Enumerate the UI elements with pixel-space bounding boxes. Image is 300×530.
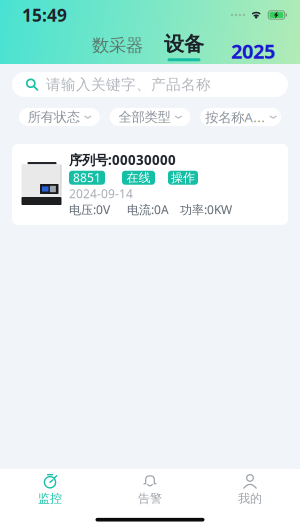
staticText: 我的: [238, 491, 262, 506]
button[interactable]: 数采器: [92, 30, 143, 60]
button[interactable]: 按名称A...: [200, 108, 281, 126]
staticText: 告警: [138, 491, 162, 506]
staticText: 全部类型: [118, 109, 170, 125]
button[interactable]: 请输入关键字、产品名称: [0, 72, 300, 97]
staticText: 序列号:00030000: [69, 151, 176, 169]
staticText: 2025: [231, 38, 275, 64]
staticText: 2024-09-14: [69, 186, 133, 202]
staticText: 在线: [126, 170, 150, 185]
button[interactable]: 监控: [0, 475, 100, 505]
staticText: 所有状态: [28, 109, 80, 125]
staticText: 监控: [38, 491, 62, 506]
staticText: 15:49: [22, 3, 67, 26]
staticText: 请输入关键字、产品名称: [46, 75, 211, 93]
button[interactable]: 全部类型: [110, 108, 190, 126]
staticText: 设备: [164, 32, 204, 56]
staticText: 按名称A...: [205, 108, 265, 126]
staticText: 功率:0KW: [180, 202, 232, 217]
staticText: 操作: [171, 170, 195, 185]
staticText: 数采器: [92, 35, 143, 56]
button[interactable]: 序列号:00030000: [0, 144, 300, 225]
staticText: 电压:0V: [69, 202, 110, 217]
staticText: 电流:0A: [127, 202, 169, 217]
button[interactable]: 设备: [164, 30, 204, 60]
button[interactable]: 所有状态: [19, 108, 100, 126]
button[interactable]: 告警: [100, 475, 200, 505]
button[interactable]: 我的: [200, 475, 300, 505]
staticText: 8851: [73, 170, 101, 186]
